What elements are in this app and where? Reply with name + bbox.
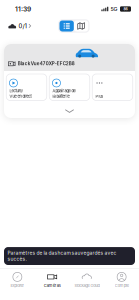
button[interactable]: stockage cloud xyxy=(69,272,104,288)
staticText: 86 xyxy=(123,7,127,11)
staticText: Lecture/ xyxy=(9,88,22,93)
staticText: Appairage de xyxy=(52,88,75,93)
staticText: Plus xyxy=(95,94,103,99)
button[interactable]: Appairage de xyxy=(49,74,90,100)
staticText: Vue en direct xyxy=(9,94,31,99)
button[interactable]: Lecture/ xyxy=(6,74,47,100)
staticText: Paramètres de la dashcam sauvegardés ave… xyxy=(7,250,116,262)
staticText: 5G xyxy=(110,6,117,12)
staticText: 11:39 xyxy=(15,5,31,13)
staticText: 0/1 xyxy=(18,22,26,30)
button[interactable]: Explorer xyxy=(0,272,35,288)
staticText: stockage cloud xyxy=(74,283,99,288)
staticText: Explorer xyxy=(10,283,24,288)
button[interactable]: Caméras xyxy=(35,272,70,288)
button[interactable]: List view xyxy=(59,20,74,31)
button[interactable]: Map view xyxy=(74,20,88,31)
button[interactable]: Compte xyxy=(104,272,139,288)
staticText: Compte xyxy=(115,283,129,288)
staticText: Caméras xyxy=(44,283,61,288)
staticText: la batterie xyxy=(52,94,69,99)
button[interactable]: Plus xyxy=(92,74,133,100)
staticText: BlackVue470XP-EFC2B8 xyxy=(18,61,75,66)
button[interactable]: 0/1 xyxy=(0,19,31,33)
